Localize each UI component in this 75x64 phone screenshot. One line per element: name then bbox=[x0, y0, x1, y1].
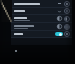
button[interactable]: Value bbox=[11, 0, 72, 7]
button[interactable]: Value bbox=[57, 1, 62, 6]
button[interactable]: Toggle on bbox=[55, 32, 63, 36]
button[interactable]: Expand bbox=[11, 8, 72, 14]
button[interactable]: Details bbox=[64, 8, 70, 14]
button[interactable]: Theme bbox=[64, 16, 70, 22]
button[interactable]: Contrast bbox=[11, 23, 72, 30]
button[interactable]: Expand bbox=[57, 9, 62, 14]
button[interactable]: Display bbox=[64, 24, 70, 30]
button[interactable]: More bbox=[64, 31, 70, 37]
button[interactable]: Toggle on bbox=[11, 31, 72, 37]
button[interactable]: Contrast bbox=[57, 16, 62, 21]
button[interactable]: Info bbox=[64, 1, 70, 7]
button[interactable]: Contrast bbox=[57, 24, 62, 29]
button[interactable]: Contrast bbox=[11, 15, 72, 22]
